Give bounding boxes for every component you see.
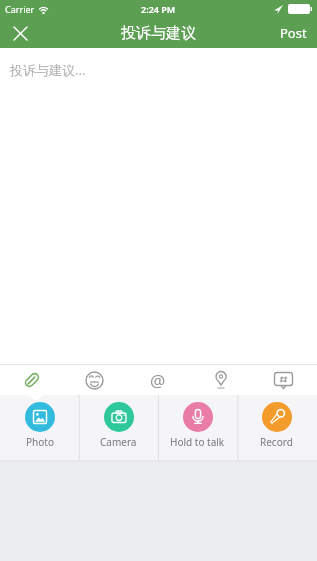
staticText: 2:24 PM	[141, 3, 176, 15]
button[interactable]	[63, 365, 126, 395]
button[interactable]	[9, 22, 31, 44]
button[interactable]: Camera	[79, 395, 158, 461]
button[interactable]	[0, 365, 63, 395]
button[interactable]: Hold to talk	[158, 395, 237, 461]
staticText: 投诉与建议...	[10, 61, 86, 79]
staticText: Hold to talk	[170, 435, 225, 449]
staticText: Photo	[26, 435, 54, 449]
button[interactable]	[252, 365, 315, 395]
button[interactable]: Post	[280, 24, 317, 42]
staticText: 投诉与建议	[121, 24, 196, 43]
button[interactable]: @	[126, 365, 189, 395]
staticText: Post	[280, 24, 307, 42]
staticText: Carrier	[5, 3, 35, 15]
button[interactable]	[189, 365, 252, 395]
staticText: Camera	[100, 435, 137, 449]
button[interactable]: Record	[237, 395, 316, 461]
staticText: @	[150, 369, 166, 392]
staticText: Record	[260, 435, 293, 449]
button[interactable]: Photo	[0, 395, 79, 461]
